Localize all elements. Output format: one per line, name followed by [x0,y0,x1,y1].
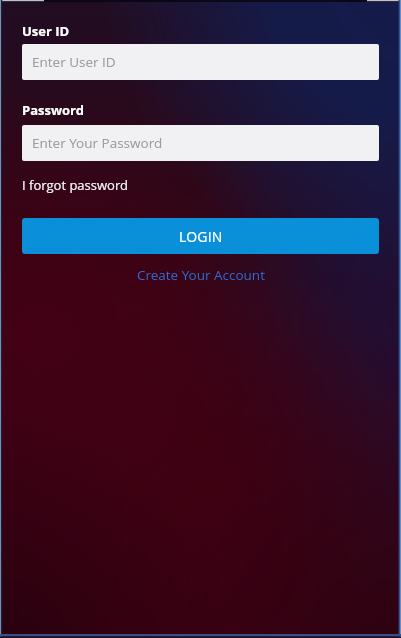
staticText: User ID [22,22,70,40]
button[interactable]: Enter User ID [22,44,379,80]
button[interactable]: LOGIN [22,218,379,254]
staticText: Enter User ID [32,53,116,71]
button[interactable]: I forgot password [22,176,128,194]
staticText: Password [22,101,84,119]
button[interactable]: Create Your Account [137,266,265,284]
staticText: LOGIN [179,227,223,246]
button[interactable]: Enter Your Password [22,125,379,161]
staticText: Enter Your Password [32,134,163,152]
